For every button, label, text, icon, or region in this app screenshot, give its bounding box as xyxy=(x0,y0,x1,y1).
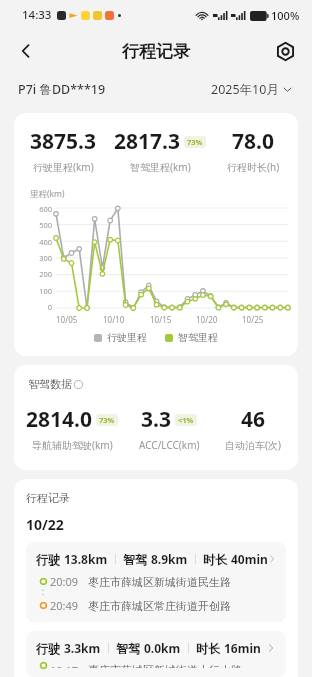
staticText: 智驾 xyxy=(116,640,144,656)
staticText: 时长 xyxy=(196,640,224,656)
staticText: 78.0 xyxy=(232,127,274,156)
staticText: 8.9km xyxy=(151,551,188,567)
staticText: 智驾 xyxy=(123,551,151,567)
staticText: 600 xyxy=(39,204,52,214)
staticText: 行程记录 xyxy=(122,41,190,62)
staticText: 10:17 xyxy=(50,663,79,668)
staticText: 100 xyxy=(39,286,52,296)
staticText: 2025年10月 xyxy=(211,81,279,98)
staticText: 智驾里程(km) xyxy=(130,160,191,174)
staticText: 16min xyxy=(224,640,261,656)
button[interactable]: 行驶 xyxy=(26,542,286,622)
staticText: 智驾数据 xyxy=(28,377,72,391)
button[interactable]: 行驶 xyxy=(26,631,286,677)
staticText: 2814.0 xyxy=(26,405,92,434)
staticText: 46 xyxy=(241,405,266,434)
staticText: 100% xyxy=(271,8,300,23)
button[interactable]: Settings xyxy=(268,34,302,68)
staticText: 枣庄市薛城区新城街道大行山路 xyxy=(88,663,242,668)
staticText: 行驶 xyxy=(36,640,64,656)
staticText: 智驾里程 xyxy=(178,331,218,344)
staticText: 3875.3 xyxy=(30,127,96,156)
staticText: 73% xyxy=(99,415,115,425)
staticText: 行驶 xyxy=(36,551,64,567)
staticText: 行驶里程(km) xyxy=(33,160,94,174)
staticText: 10/22 xyxy=(26,515,64,534)
staticText: 400 xyxy=(39,237,52,247)
staticText: 3.3 xyxy=(141,405,171,434)
staticText: 3.3km xyxy=(64,640,101,656)
staticText: 300 xyxy=(39,253,52,263)
staticText: 导航辅助驾驶(km) xyxy=(32,438,113,452)
staticText: 行程记录 xyxy=(26,491,70,505)
staticText: 时长 xyxy=(203,551,231,567)
staticText: 2817.3 xyxy=(114,127,180,156)
staticText: 40min xyxy=(231,551,268,567)
staticText: 14:33 xyxy=(22,7,52,23)
button[interactable]: 2025年10月 xyxy=(209,77,294,102)
staticText: 20:09 xyxy=(50,574,79,589)
staticText: 73% xyxy=(187,137,203,147)
staticText: 10/25 xyxy=(242,314,264,325)
staticText: 自动泊车(次) xyxy=(225,438,281,452)
staticText: 行驶里程 xyxy=(107,331,147,344)
staticText: 10/15 xyxy=(150,314,172,325)
staticText: 10/10 xyxy=(103,314,125,325)
staticText: ACC/LCC(km) xyxy=(139,438,200,452)
staticText: 20:49 xyxy=(50,598,79,613)
staticText: 里程(km) xyxy=(30,188,65,200)
staticText: <1% xyxy=(178,415,194,425)
staticText: 枣庄市薛城区新城街道民生路 xyxy=(88,575,231,589)
button[interactable]: Back xyxy=(8,33,44,69)
staticText: 0 xyxy=(47,302,52,312)
staticText: 10/20 xyxy=(196,314,218,325)
staticText: 行程时长(h) xyxy=(227,160,280,174)
staticText: 0.0km xyxy=(144,640,181,656)
staticText: 10/05 xyxy=(56,314,78,325)
staticText: 500 xyxy=(39,220,52,230)
staticText: 200 xyxy=(39,269,52,279)
staticText: 枣庄市薛城区常庄街道开创路 xyxy=(88,599,231,613)
staticText: P7i 鲁DD***19 xyxy=(18,81,106,98)
staticText: 13.8km xyxy=(64,551,108,567)
